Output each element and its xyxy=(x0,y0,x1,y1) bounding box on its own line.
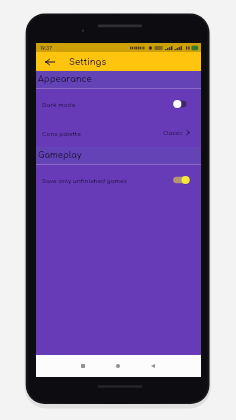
staticText: Settings xyxy=(69,57,107,67)
button[interactable]: Save only unfinished games xyxy=(36,165,201,194)
button[interactable]: Home xyxy=(114,362,122,370)
button[interactable]: Dark mode xyxy=(36,89,201,118)
staticText: 19:37 xyxy=(40,45,53,51)
staticText: Classic xyxy=(163,130,183,136)
staticText: Dark mode xyxy=(42,102,76,108)
button[interactable]: Dark mode switch xyxy=(173,98,190,110)
button[interactable]: Cons palette xyxy=(36,118,201,147)
button[interactable]: Back xyxy=(149,362,157,370)
staticText: Save only unfinished games xyxy=(42,178,127,184)
staticText: Cons palette xyxy=(42,131,81,137)
button[interactable]: Save only unfinished games switch xyxy=(173,174,190,186)
staticText: Appearance xyxy=(38,75,92,84)
staticText: Gameplay xyxy=(38,151,82,160)
button[interactable]: Back xyxy=(41,52,58,71)
button[interactable]: Recent apps xyxy=(79,362,87,370)
